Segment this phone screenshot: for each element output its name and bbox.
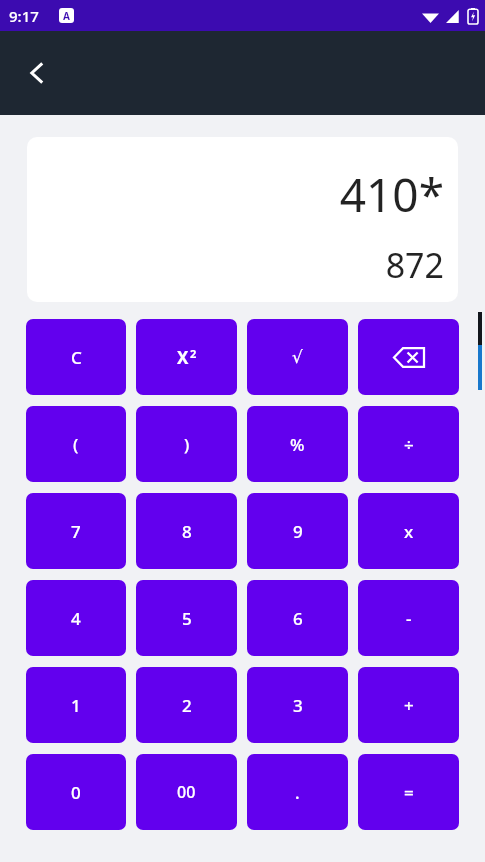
staticText: 9 [293, 520, 303, 543]
button[interactable]: 00 [136, 754, 237, 830]
staticText: X [177, 346, 189, 369]
staticText: ÷ [404, 433, 414, 456]
staticText: + [404, 694, 414, 717]
staticText: 2 [190, 346, 197, 361]
staticText: 2 [182, 694, 192, 717]
staticText: 7 [71, 520, 81, 543]
staticText: A [63, 9, 70, 23]
staticText: 872 [385, 242, 444, 288]
staticText: √ [292, 347, 303, 367]
staticText: 6 [293, 607, 303, 630]
staticText: 9:17 [9, 6, 39, 26]
button[interactable]: Backspace [358, 319, 459, 395]
staticText: 00 [177, 781, 196, 803]
button[interactable]: 2 [136, 667, 237, 743]
button[interactable]: 7 [26, 493, 126, 569]
staticText: % [290, 433, 305, 456]
button[interactable]: = [358, 754, 459, 830]
staticText: ) [184, 433, 190, 456]
staticText: x [404, 520, 414, 543]
staticText: 0 [71, 781, 81, 804]
button[interactable]: ) [136, 406, 237, 482]
button[interactable]: . [247, 754, 348, 830]
button[interactable]: ÷ [358, 406, 459, 482]
staticText: 3 [293, 694, 303, 717]
button[interactable]: x [358, 493, 459, 569]
button[interactable]: 3 [247, 667, 348, 743]
staticText: = [404, 781, 414, 804]
button[interactable]: 1 [26, 667, 126, 743]
button[interactable]: + [358, 667, 459, 743]
button[interactable]: 6 [247, 580, 348, 656]
button[interactable]: ( [26, 406, 126, 482]
button[interactable]: - [358, 580, 459, 656]
button[interactable]: 0 [26, 754, 126, 830]
button[interactable]: 8 [136, 493, 237, 569]
staticText: 5 [182, 607, 192, 630]
staticText: 1 [71, 694, 81, 717]
staticText: 4 [71, 607, 81, 630]
staticText: ( [73, 433, 79, 456]
staticText: 8 [182, 520, 192, 543]
staticText: C [71, 346, 82, 369]
button[interactable]: 4 [26, 580, 126, 656]
button[interactable]: √ [247, 319, 348, 395]
button[interactable]: % [247, 406, 348, 482]
button[interactable]: Back [14, 50, 60, 96]
staticText: 410* [339, 163, 444, 226]
button[interactable]: X [136, 319, 237, 395]
button[interactable]: C [26, 319, 126, 395]
staticText: - [406, 607, 412, 630]
button[interactable]: 5 [136, 580, 237, 656]
staticText: . [295, 781, 300, 804]
button[interactable]: 9 [247, 493, 348, 569]
